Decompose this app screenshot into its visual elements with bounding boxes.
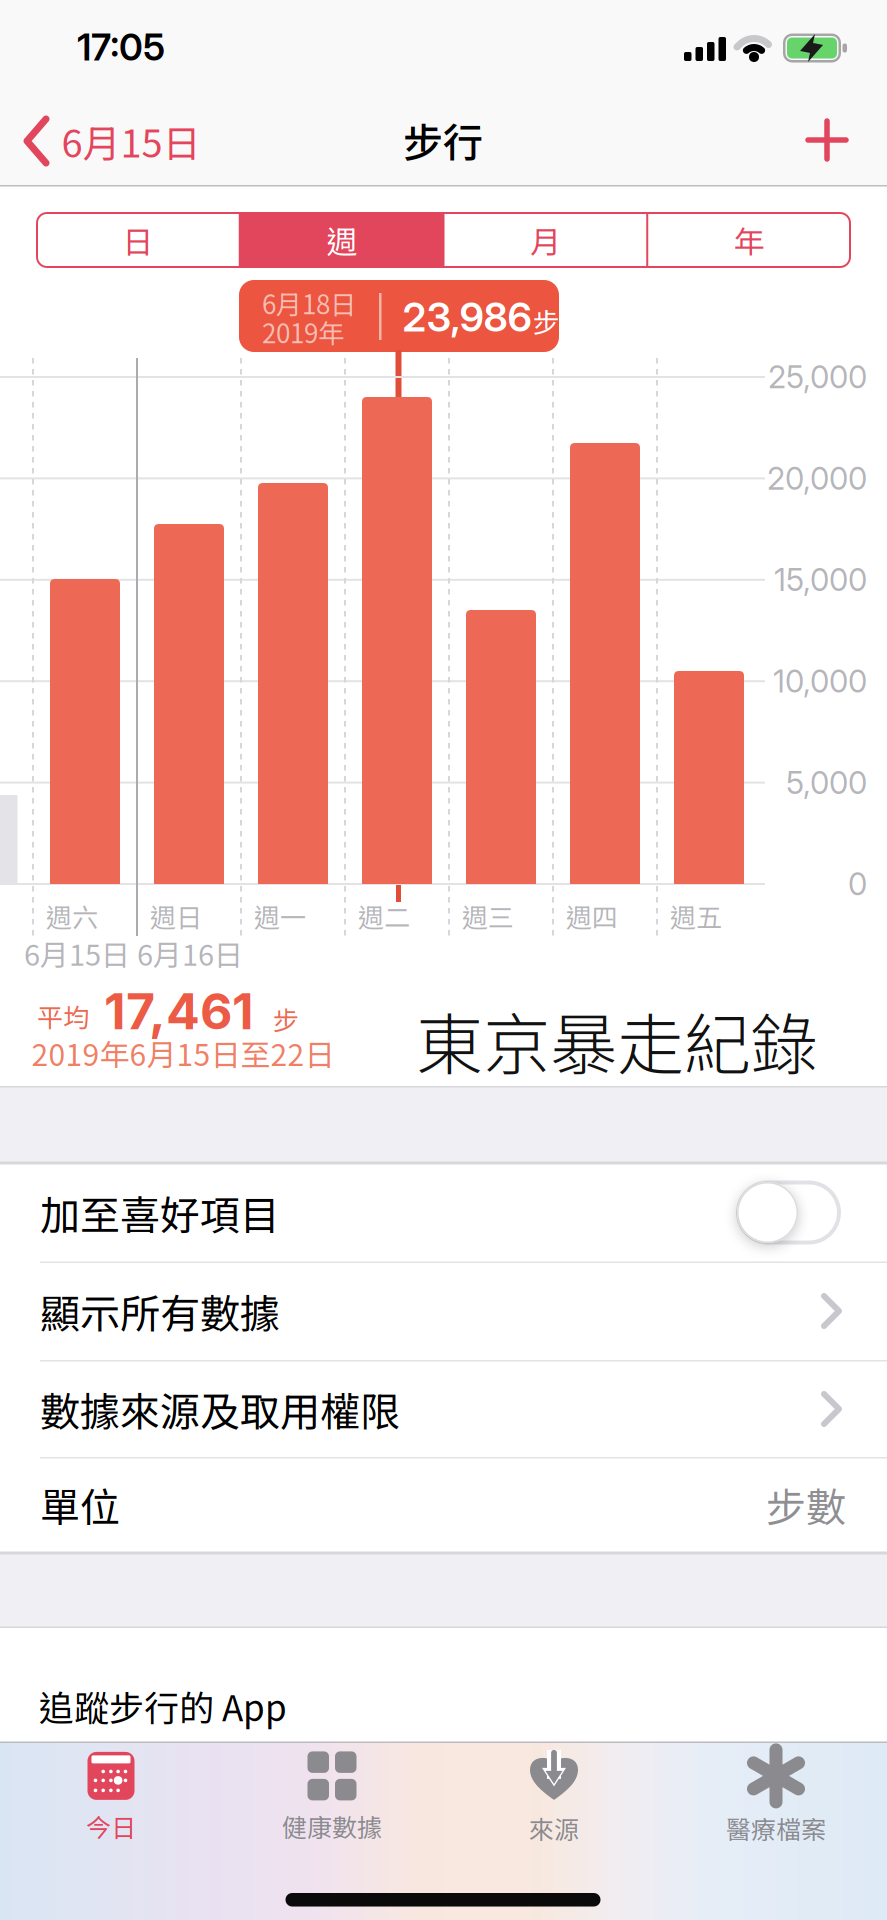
staticText: 健康數據 [282, 1808, 382, 1844]
staticText: 週一 [254, 897, 306, 935]
staticText: 東京暴走紀錄 [416, 991, 818, 1088]
button[interactable]: 顯示所有數據 [0, 1262, 887, 1360]
button[interactable]: 6月15日 [15, 106, 205, 176]
staticText: 週三 [462, 897, 514, 935]
staticText: 月 [530, 218, 561, 262]
staticText: 17:05 [77, 25, 165, 69]
staticText: 0 [848, 865, 867, 903]
staticText: 顯示所有數據 [40, 1282, 280, 1340]
button[interactable]: 醫療檔案 [676, 1743, 876, 1853]
staticText: 15,000 [774, 561, 867, 598]
button[interactable]: 週 [240, 212, 444, 268]
button[interactable]: 年 [647, 212, 851, 268]
staticText: 週五 [670, 897, 722, 935]
button[interactable]: 單位 [0, 1456, 887, 1552]
staticText: 17,461 [104, 981, 254, 1041]
staticText: 數據來源及取用權限 [40, 1380, 400, 1438]
button[interactable] [736, 1180, 841, 1245]
staticText: 步行 [403, 111, 483, 169]
staticText: 6月15日 [24, 932, 130, 974]
staticText: 25,000 [768, 358, 867, 396]
button[interactable]: 來源 [454, 1743, 654, 1853]
staticText: 步 [273, 1000, 299, 1038]
button[interactable] [797, 110, 857, 170]
button[interactable]: 今日 [11, 1743, 211, 1853]
staticText: 平均 [37, 997, 89, 1035]
staticText: 6月15日 [61, 113, 200, 168]
button[interactable]: 健康數據 [232, 1743, 432, 1853]
staticText: 週四 [566, 897, 618, 935]
staticText: 週六 [46, 897, 98, 935]
staticText: 10,000 [773, 662, 867, 700]
button[interactable]: 日 [36, 212, 240, 268]
staticText: 步 [532, 301, 559, 341]
staticText: 2019年6月15日至22日 [31, 1031, 334, 1075]
staticText: 6月18日 [262, 284, 356, 322]
staticText: 日 [122, 218, 153, 262]
staticText: 20,000 [767, 460, 867, 497]
staticText: 5,000 [786, 764, 867, 801]
staticText: 追蹤步行的 App [39, 1681, 287, 1731]
button[interactable]: 月 [443, 212, 647, 268]
staticText: 週日 [150, 897, 202, 935]
staticText: 週二 [358, 897, 410, 935]
staticText: 6月16日 [137, 932, 243, 974]
staticText: 2019年 [262, 313, 344, 351]
staticText: 醫療檔案 [726, 1810, 826, 1846]
staticText: 23,986 [402, 293, 531, 341]
staticText: 今日 [86, 1808, 136, 1844]
staticText: 加至喜好項目 [40, 1183, 280, 1241]
staticText: 單位 [40, 1475, 120, 1533]
staticText: 年 [734, 218, 765, 262]
button[interactable]: 數據來源及取用權限 [0, 1360, 887, 1457]
staticText: 來源 [529, 1810, 579, 1846]
staticText: 步數 [766, 1475, 846, 1533]
staticText: 週 [326, 218, 357, 262]
